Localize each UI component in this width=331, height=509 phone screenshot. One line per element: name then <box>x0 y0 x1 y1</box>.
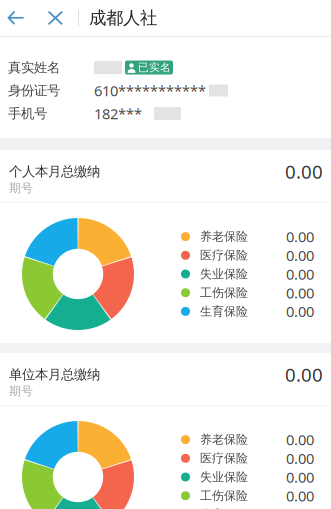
staticText: 手机号 <box>8 105 47 122</box>
staticText: 真实姓名 <box>8 59 60 76</box>
staticText: 医疗保险 <box>200 248 248 263</box>
staticText: 182*** <box>94 104 142 123</box>
staticText: 工伤保险 <box>200 488 248 503</box>
staticText: 生育保险 <box>200 304 248 319</box>
staticText: 0.00 <box>285 362 323 387</box>
staticText: 个人本月总缴纳 <box>9 163 100 180</box>
staticText: 工伤保险 <box>200 285 248 300</box>
staticText: 0.00 <box>285 159 323 184</box>
staticText: 生育保险 <box>200 507 248 509</box>
staticText: 0.00 <box>286 486 314 505</box>
staticText: 期号 <box>9 181 33 195</box>
staticText: 610*********** <box>94 81 206 100</box>
staticText: 0.00 <box>286 302 314 321</box>
staticText: 期号 <box>9 384 33 398</box>
button[interactable]: Close <box>32 0 71 36</box>
staticText: 0.00 <box>286 246 314 265</box>
staticText: 养老保险 <box>200 229 248 244</box>
staticText: 失业保险 <box>200 267 248 281</box>
staticText: 0.00 <box>286 430 314 449</box>
staticText: 0.00 <box>286 264 314 284</box>
staticText: 身份证号 <box>8 82 60 99</box>
staticText: 0.00 <box>286 227 314 246</box>
staticText: 0.00 <box>286 283 314 302</box>
staticText: 成都人社 <box>89 7 157 29</box>
staticText: 已实名 <box>138 61 171 74</box>
staticText: 失业保险 <box>200 470 248 484</box>
staticText: 0.00 <box>286 467 314 487</box>
staticText: 单位本月总缴纳 <box>9 366 100 383</box>
staticText: 医疗保险 <box>200 451 248 466</box>
staticText: 0.00 <box>286 449 314 468</box>
staticText: 养老保险 <box>200 432 248 447</box>
button[interactable]: Back <box>0 0 32 36</box>
